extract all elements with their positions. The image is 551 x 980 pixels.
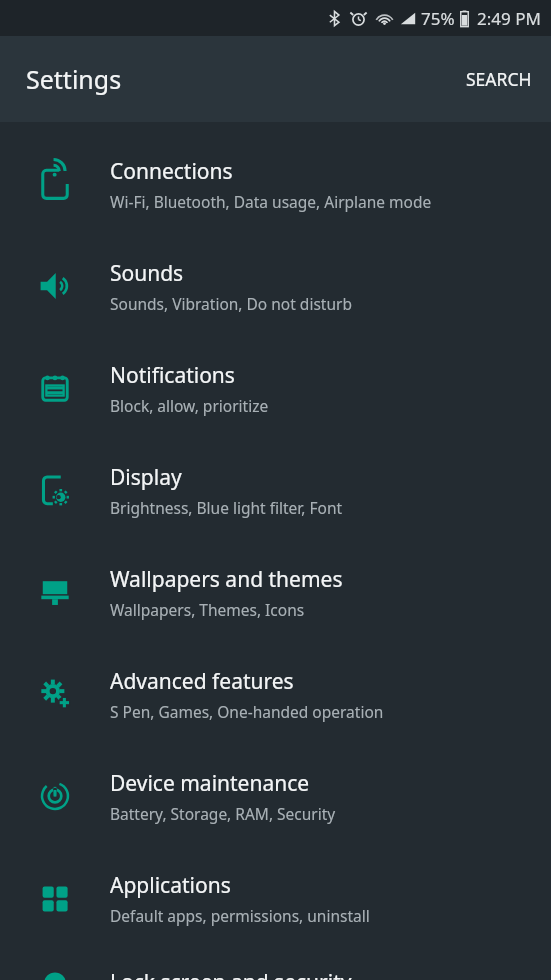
staticText: Settings [26, 62, 122, 96]
button[interactable]: Device maintenance [0, 745, 551, 847]
staticText: Device maintenance [110, 769, 310, 798]
button[interactable]: Advanced features [0, 643, 551, 745]
staticText: 75% [421, 7, 455, 30]
staticText: Default apps, permissions, uninstall [110, 905, 370, 926]
staticText: Sounds, Vibration, Do not disturb [110, 293, 352, 314]
staticText: Applications [110, 871, 231, 900]
staticText: 2:49 PM [477, 7, 541, 30]
button[interactable]: Applications [0, 847, 551, 949]
staticText: Wi-Fi, Bluetooth, Data usage, Airplane m… [110, 191, 432, 212]
staticText: Sounds [110, 259, 184, 288]
staticText: Battery, Storage, RAM, Security [110, 803, 336, 824]
staticText: Advanced features [110, 667, 294, 696]
staticText: Brightness, Blue light filter, Font [110, 497, 343, 518]
staticText: Connections [110, 157, 233, 186]
button[interactable]: Lock screen and security [0, 949, 551, 980]
button[interactable]: Wallpapers and themes [0, 541, 551, 643]
staticText: Block, allow, prioritize [110, 395, 269, 416]
staticText: Notifications [110, 361, 235, 390]
staticText: Wallpapers and themes [110, 565, 343, 594]
staticText: S Pen, Games, One-handed operation [110, 701, 384, 722]
staticText: SEARCH [466, 67, 532, 91]
staticText: Display [110, 463, 182, 492]
staticText: Lock screen and security [110, 968, 352, 980]
button[interactable]: Connections [0, 133, 551, 235]
button[interactable]: Display [0, 439, 551, 541]
button[interactable]: Sounds [0, 235, 551, 337]
button[interactable]: SEARCH [447, 55, 551, 103]
staticText: Wallpapers, Themes, Icons [110, 599, 305, 620]
button[interactable]: Notifications [0, 337, 551, 439]
